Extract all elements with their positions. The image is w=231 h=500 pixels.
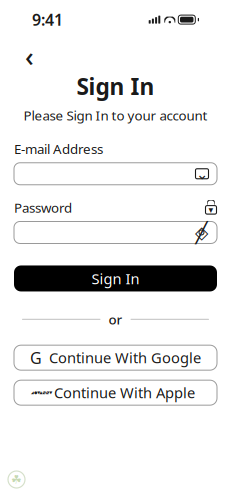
staticText: ▾ [208,205,213,215]
staticText: Sign In [91,269,139,288]
staticText: Password [14,199,72,216]
staticText: 9:41 [32,9,63,30]
staticText: G [30,347,42,368]
staticText: ╱ [195,221,207,244]
staticText: Continue With Apple [54,383,195,402]
staticText: ☘ [11,473,22,486]
button[interactable]: G [14,345,217,370]
button[interactable]:  [14,380,217,405]
staticText: or [108,310,122,328]
button[interactable]: Back [25,45,47,67]
staticText: ◇ [195,223,208,242]
staticText: Sign In [76,71,154,101]
staticText: ⌄ [196,166,208,182]
staticText: Please Sign In to your account [23,106,207,124]
staticText: Continue With Google [49,348,201,367]
staticText: E-mail Address [14,140,103,158]
staticText: ‹ [25,38,34,74]
staticText:  [30,382,52,403]
button[interactable]: Sign In [14,265,217,291]
